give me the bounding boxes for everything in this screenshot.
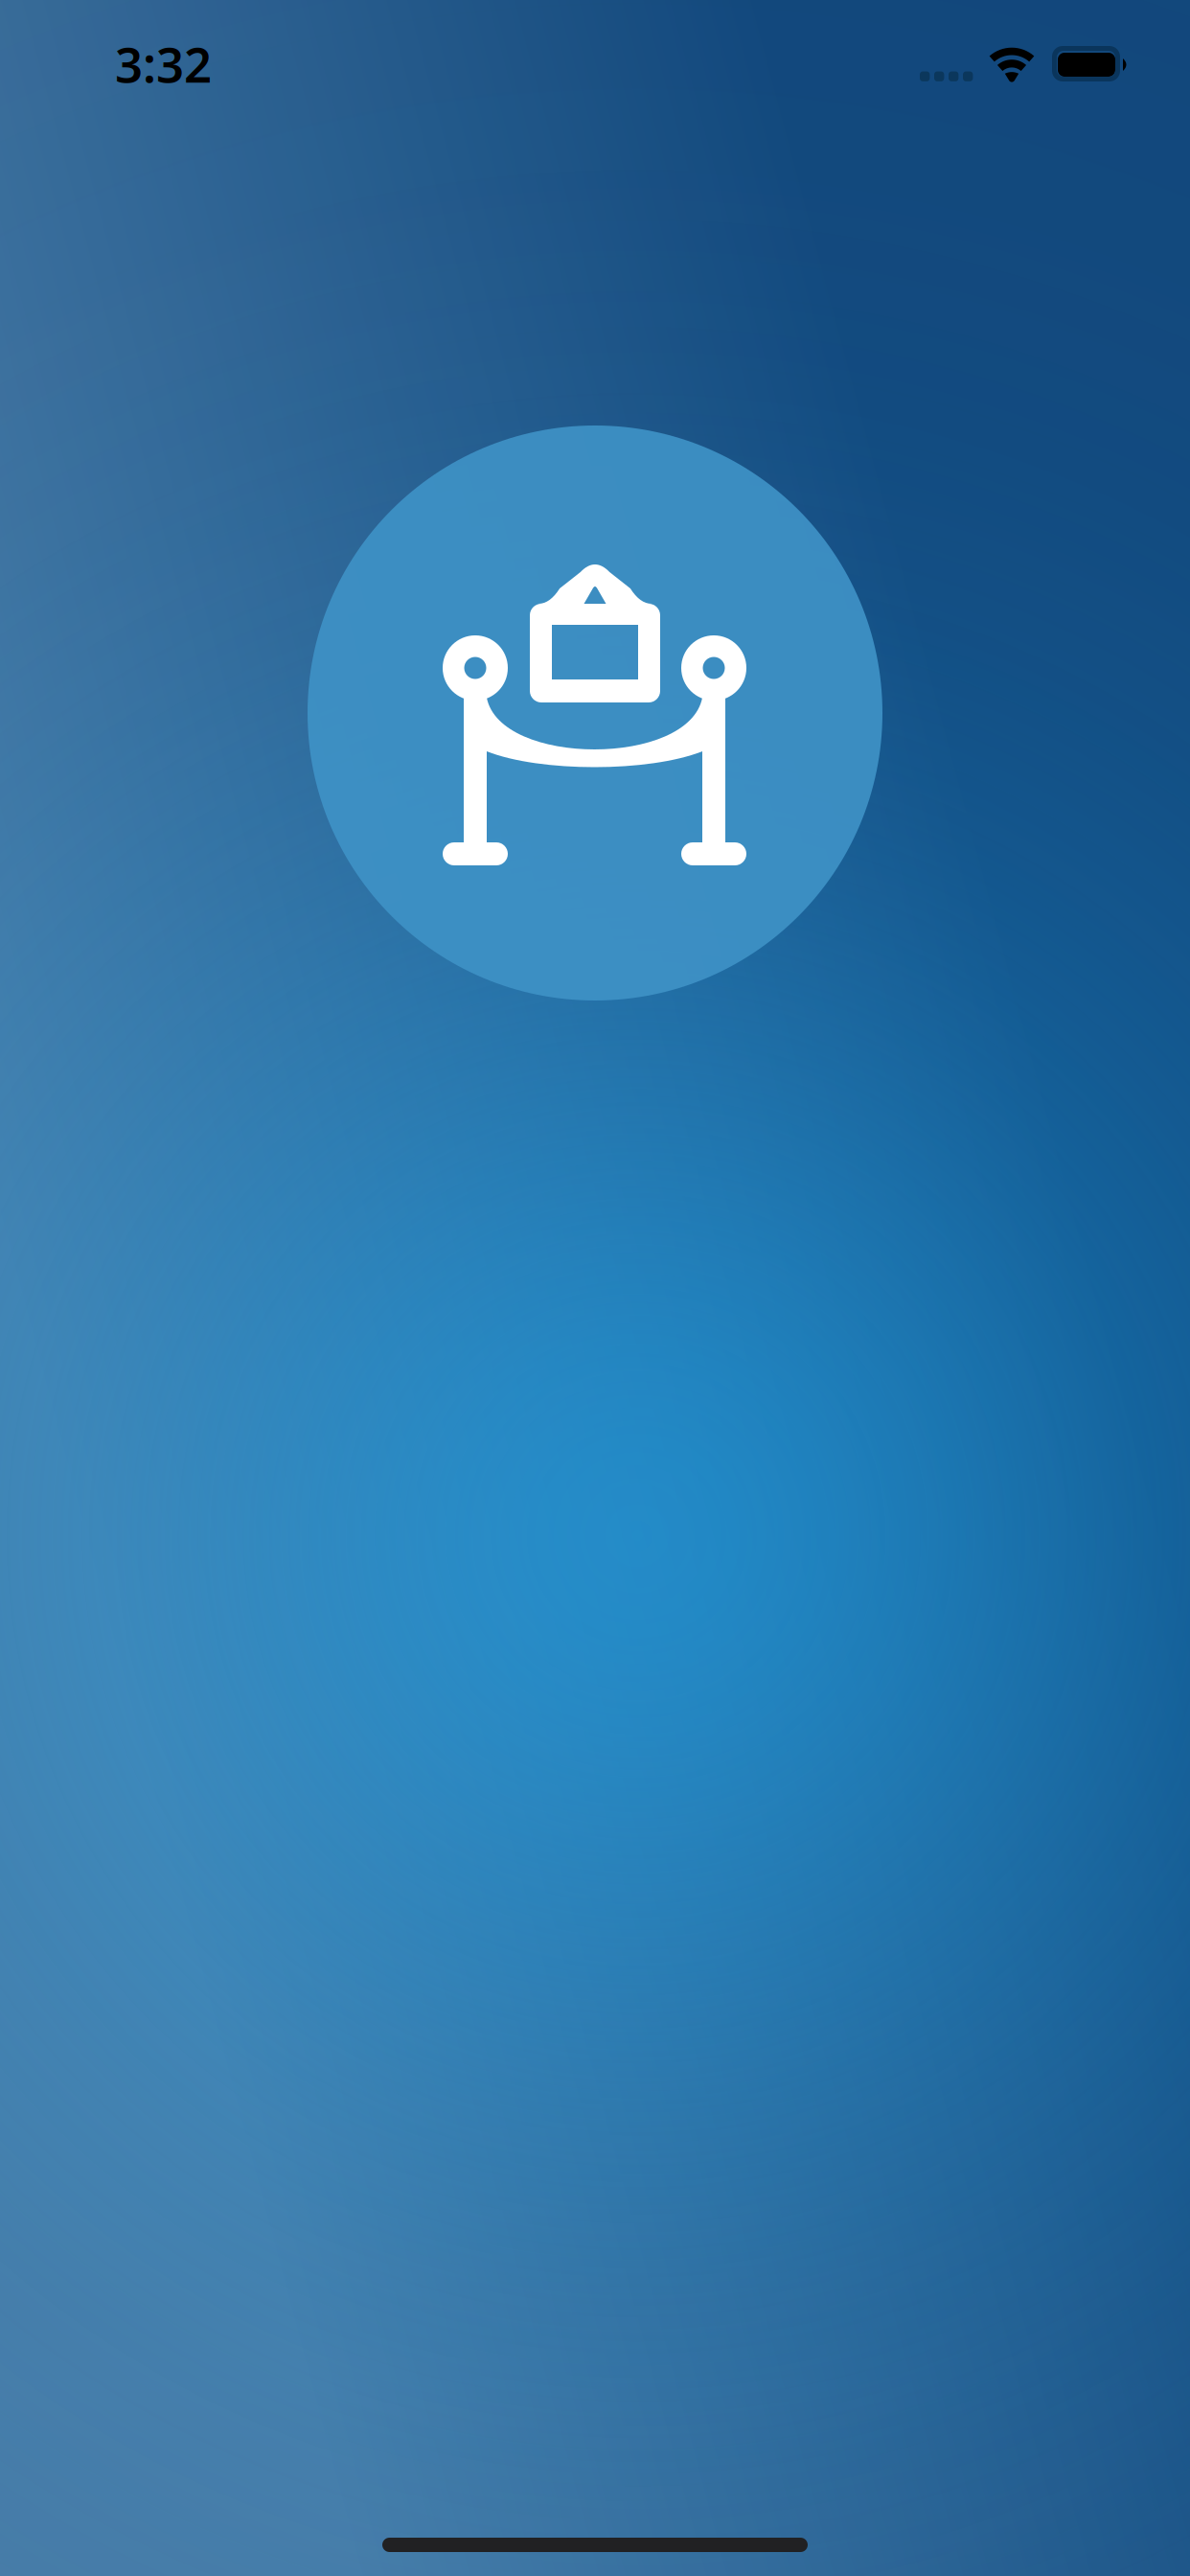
staticText: 3:32 xyxy=(115,32,212,96)
